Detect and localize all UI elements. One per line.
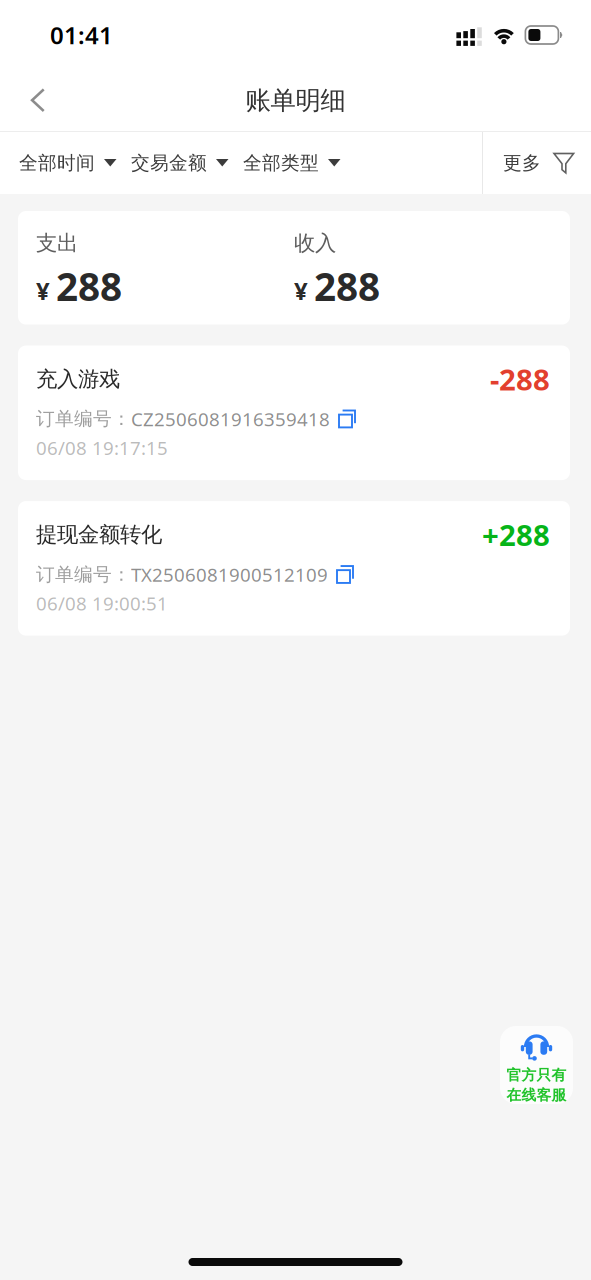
button[interactable]: 复制订单编号 [338,409,356,428]
button[interactable]: 在线客服 [500,1026,573,1104]
staticText: 收入 [294,230,336,256]
staticText: 提现金额转化 [36,521,162,548]
staticText: 订单编号： [36,563,131,586]
staticText: 更多 [503,151,541,174]
button[interactable]: 全部类型 [243,135,341,190]
button[interactable]: 全部时间 [19,135,117,190]
staticText: 订单编号： [36,407,131,430]
staticText: 06/08 19:17:15 [36,435,168,460]
staticText: 交易金额 [131,151,207,174]
staticText: 全部时间 [19,151,95,174]
staticText: ¥ [36,275,50,307]
staticText: CZ2506081916359418 [131,406,330,431]
staticText: -288 [490,360,550,399]
staticText: 在线客服 [506,1086,566,1104]
staticText: TX2506081900512109 [131,562,328,587]
staticText: 支出 [36,230,78,256]
staticText: 全部类型 [243,151,319,174]
staticText: 充入游戏 [36,366,120,392]
staticText: +288 [482,515,550,554]
staticText: 账单明细 [245,85,345,116]
staticText: 06/08 19:00:51 [36,591,168,616]
button[interactable]: 返回 [0,70,76,131]
staticText: 288 [314,260,380,311]
staticText: ¥ [294,275,308,307]
staticText: 官方只有 [506,1066,566,1084]
button[interactable]: 复制订单编号 [336,565,354,584]
button[interactable]: 交易金额 [131,135,229,190]
staticText: 01:41 [50,19,113,51]
staticText: 288 [56,260,122,311]
button[interactable]: 更多 [483,135,591,190]
